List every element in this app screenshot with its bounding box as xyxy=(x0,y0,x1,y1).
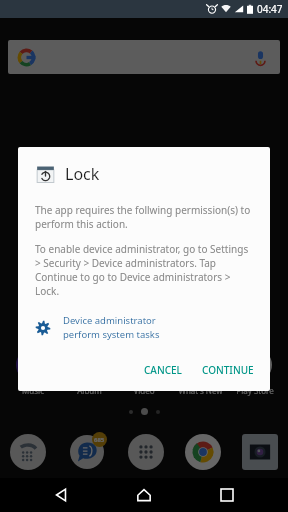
staticText: perform system tasks xyxy=(63,328,160,341)
staticText: Lock xyxy=(65,163,100,185)
staticText: Play Store xyxy=(236,385,274,396)
staticText: Music xyxy=(22,385,44,396)
button[interactable]: Video xyxy=(117,348,171,396)
button[interactable]: Play Store xyxy=(228,348,282,396)
button[interactable]: Back xyxy=(39,478,83,512)
staticText: CONTINUE xyxy=(202,363,254,377)
button[interactable]: Music xyxy=(6,348,60,396)
staticText: What's New xyxy=(178,385,223,396)
other: Voice search xyxy=(253,50,268,65)
button[interactable]: Phone xyxy=(10,434,46,470)
staticText: To enable device administrator, go to Se… xyxy=(35,242,253,298)
button[interactable]: Camera xyxy=(242,434,278,470)
button[interactable]: Recents xyxy=(205,478,249,512)
staticText: Video xyxy=(133,385,155,396)
button[interactable]: Device administrator xyxy=(18,312,270,343)
staticText: Album xyxy=(77,385,102,396)
button[interactable]: What's New xyxy=(173,348,227,396)
button[interactable]: CONTINUE xyxy=(194,357,262,383)
button[interactable]: Apps xyxy=(128,434,164,470)
button[interactable]: Voice search xyxy=(8,40,280,74)
button[interactable]: CANCEL xyxy=(136,357,190,383)
staticText: 685 xyxy=(94,436,105,444)
staticText: 04:47 xyxy=(257,2,283,16)
button[interactable]: Messaging xyxy=(67,432,107,472)
button[interactable]: Album xyxy=(62,348,116,396)
button[interactable]: Home xyxy=(122,478,166,512)
staticText: The app requires the follwing permission… xyxy=(35,203,253,231)
staticText: CANCEL xyxy=(144,363,182,377)
staticText: Device administrator xyxy=(63,314,156,327)
button[interactable]: Chrome xyxy=(185,434,221,470)
